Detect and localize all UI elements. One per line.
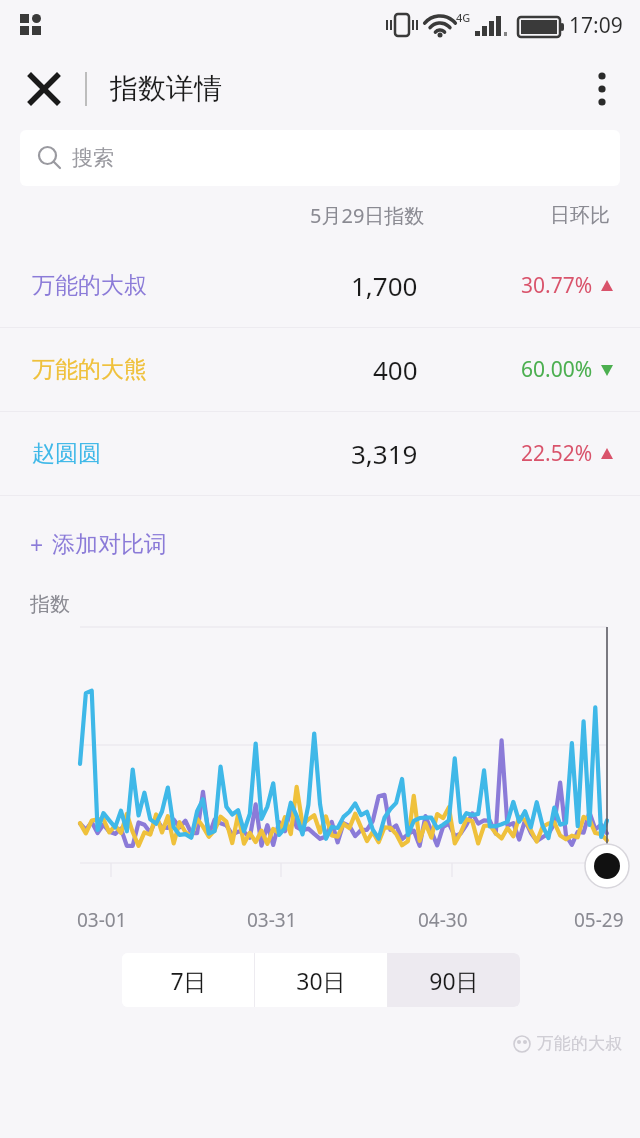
button[interactable]: 赵圆圆 <box>0 412 640 495</box>
staticText: 4G <box>456 10 471 25</box>
staticText: 5月29日指数 <box>310 202 425 229</box>
staticText: 04-30 <box>418 907 468 933</box>
staticText: 03-01 <box>77 907 127 933</box>
staticText: 03-31 <box>247 907 297 933</box>
staticText: 05-29 <box>574 907 624 933</box>
staticText: 万能的大熊 <box>32 355 147 384</box>
button[interactable]: + <box>30 529 167 560</box>
button[interactable]: Close <box>18 63 70 115</box>
staticText: 30.77% <box>521 271 593 300</box>
staticText: + <box>30 529 44 560</box>
button[interactable]: 搜索 <box>20 130 620 186</box>
staticText: 赵圆圆 <box>32 439 101 468</box>
staticText: 搜索 <box>72 145 114 171</box>
staticText: 万能的大叔 <box>537 1033 622 1054</box>
staticText: 3,319 <box>351 436 418 471</box>
staticText: 90日 <box>429 965 479 996</box>
staticText: 指数 <box>30 592 70 617</box>
staticText: 添加对比词 <box>52 530 167 559</box>
staticText: 指数详情 <box>110 71 222 106</box>
staticText: 60.00% <box>521 355 593 384</box>
staticText: 日环比 <box>550 203 610 228</box>
staticText: 30日 <box>296 965 346 996</box>
staticText: 万能的大叔 <box>32 271 147 300</box>
button[interactable]: More options <box>578 65 626 113</box>
staticText: 22.52% <box>521 439 593 468</box>
button[interactable]: 7日 <box>122 953 254 1007</box>
staticText: 1,700 <box>351 268 418 303</box>
button[interactable]: 万能的大叔 <box>0 244 640 327</box>
button[interactable]: 90日 <box>388 953 520 1007</box>
staticText: 400 <box>373 352 418 387</box>
staticText: 7日 <box>170 965 207 996</box>
button[interactable]: 万能的大熊 <box>0 328 640 411</box>
button[interactable]: 30日 <box>255 953 387 1007</box>
staticText: 17:09 <box>569 11 623 40</box>
